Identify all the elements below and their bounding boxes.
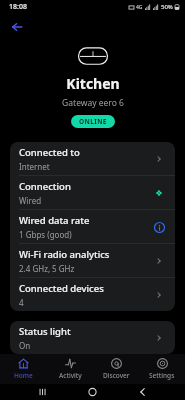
staticText: Discover xyxy=(103,371,130,380)
button[interactable]: Wi-Fi radio analytics xyxy=(10,244,175,277)
button[interactable]: Activity xyxy=(47,356,93,382)
staticText: Connected to xyxy=(19,146,80,159)
button[interactable]: Home xyxy=(0,356,47,382)
staticText: Connection xyxy=(19,180,71,193)
staticText: 4G xyxy=(136,4,143,11)
staticText: 1 Gbps (good) xyxy=(19,229,72,240)
staticText: Kitchen xyxy=(66,74,120,93)
button[interactable]: ONLINE xyxy=(71,115,115,128)
staticText: On xyxy=(19,340,31,351)
button[interactable]: Connected devices xyxy=(10,278,175,311)
button[interactable]: Discover xyxy=(93,356,139,382)
button[interactable]: Connection xyxy=(10,176,175,209)
staticText: Gateway eero 6 xyxy=(62,97,124,109)
staticText: Wired data rate xyxy=(19,214,90,227)
staticText: Settings xyxy=(149,371,175,380)
staticText: Wired xyxy=(19,195,42,206)
staticText: ONLINE xyxy=(79,117,107,126)
button[interactable]: Settings xyxy=(139,356,185,382)
staticText: 18:08 xyxy=(9,2,27,12)
staticText: Home xyxy=(14,371,33,380)
staticText: Activity xyxy=(59,371,82,380)
staticText: 50% xyxy=(161,3,173,11)
button[interactable]: Back xyxy=(6,16,28,38)
button[interactable]: Connected to xyxy=(10,142,175,175)
staticText: Wi-Fi radio analytics xyxy=(19,248,110,261)
staticText: Internet xyxy=(19,161,50,172)
staticText: Connected devices xyxy=(19,282,104,295)
button[interactable]: Status light xyxy=(10,321,175,354)
staticText: 4 xyxy=(19,297,24,308)
button[interactable]: Wired data rate xyxy=(10,210,175,243)
staticText: 2.4 GHz, 5 GHz xyxy=(19,263,75,274)
staticText: Status light xyxy=(19,325,71,338)
